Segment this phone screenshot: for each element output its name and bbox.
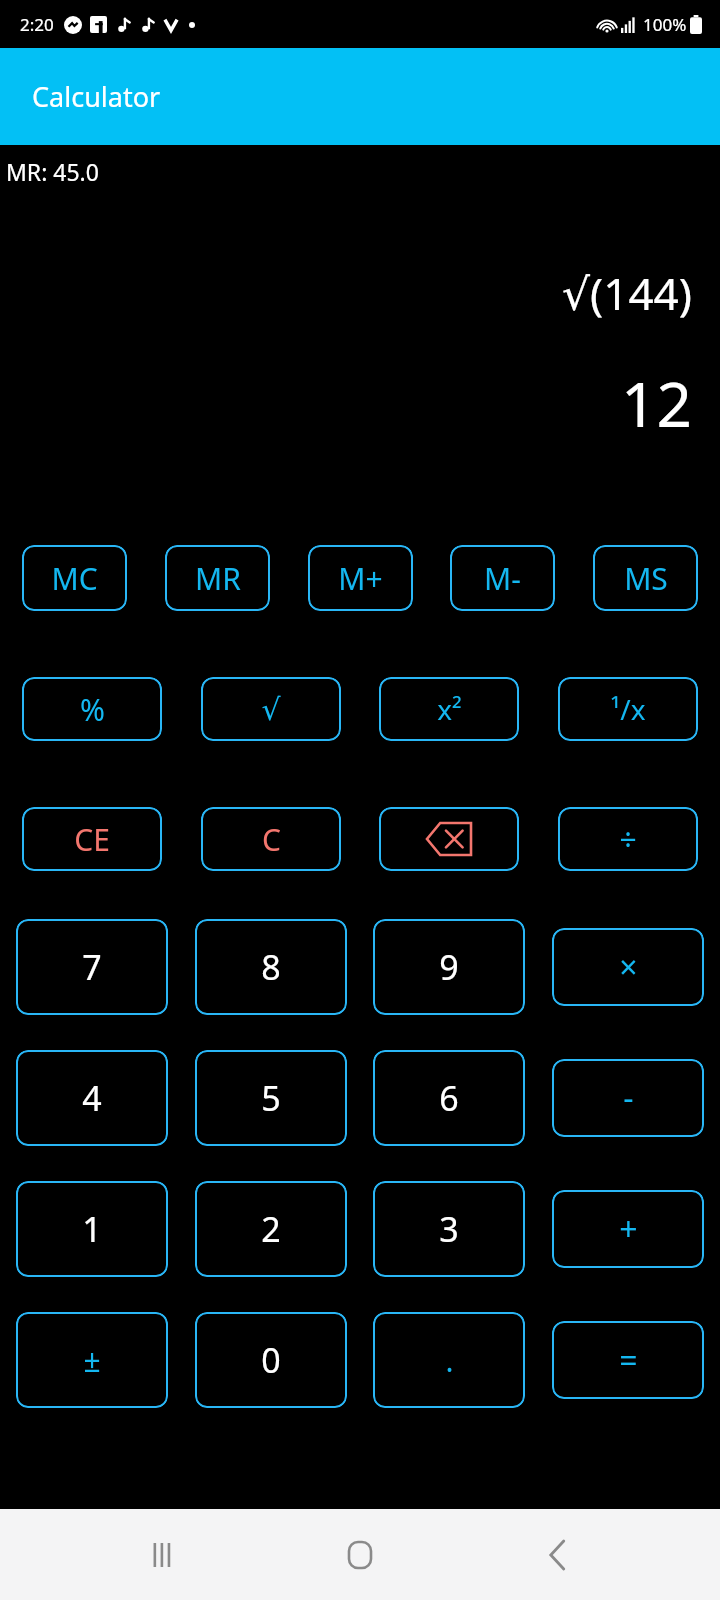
button[interactable]: × — [552, 928, 704, 1006]
staticText: 9 — [439, 944, 459, 990]
staticText: = — [619, 1338, 638, 1382]
button[interactable]: CE — [22, 807, 162, 871]
staticText: 3 — [439, 1206, 459, 1252]
button[interactable]: . — [373, 1312, 525, 1408]
staticText: ± — [83, 1340, 101, 1381]
staticText: % — [80, 689, 105, 730]
button[interactable]: M+ — [308, 545, 413, 611]
button[interactable]: ± — [16, 1312, 168, 1408]
button[interactable]: ¹/x — [558, 677, 698, 741]
staticText: 2:20 — [20, 13, 54, 36]
button[interactable]: ÷ — [558, 807, 698, 871]
button[interactable]: 5 — [195, 1050, 347, 1146]
button[interactable]: x² — [379, 677, 519, 741]
staticText: + — [619, 1207, 638, 1251]
button[interactable]: 0 — [195, 1312, 347, 1408]
button[interactable]: 8 — [195, 919, 347, 1015]
staticText: 4 — [82, 1075, 102, 1121]
button[interactable]: - — [552, 1059, 704, 1137]
staticText: × — [619, 945, 638, 989]
staticText: x² — [437, 690, 462, 728]
staticText: 100% — [643, 13, 687, 36]
staticText: MR — [195, 558, 241, 599]
staticText: . — [445, 1340, 454, 1381]
staticText: 2 — [261, 1206, 281, 1252]
button[interactable]: Home — [325, 1520, 395, 1590]
staticText: √(144) — [562, 263, 692, 323]
button[interactable]: 4 — [16, 1050, 168, 1146]
button[interactable]: % — [22, 677, 162, 741]
staticText: 1 — [82, 1206, 102, 1252]
staticText: 6 — [439, 1075, 459, 1121]
staticText: ÷ — [619, 819, 637, 860]
button[interactable]: Back — [523, 1520, 593, 1590]
button[interactable]: + — [552, 1190, 704, 1268]
button[interactable]: 1 — [16, 1181, 168, 1277]
button[interactable]: 9 — [373, 919, 525, 1015]
button[interactable]: MR — [165, 545, 270, 611]
staticText: C — [262, 819, 281, 860]
button[interactable]: 6 — [373, 1050, 525, 1146]
staticText: - — [623, 1076, 634, 1120]
button[interactable]: Backspace — [379, 807, 519, 871]
staticText: 8 — [261, 944, 281, 990]
staticText: ¹/x — [610, 690, 646, 728]
button[interactable]: 3 — [373, 1181, 525, 1277]
button[interactable]: = — [552, 1321, 704, 1399]
staticText: MR: 45.0 — [6, 156, 99, 187]
staticText: √ — [261, 692, 281, 727]
staticText: 7 — [82, 944, 102, 990]
staticText: MS — [624, 558, 668, 599]
button[interactable]: 2 — [195, 1181, 347, 1277]
button[interactable]: Recents — [128, 1520, 198, 1590]
staticText: 5 — [261, 1075, 281, 1121]
staticText: M+ — [338, 558, 383, 599]
button[interactable]: √ — [201, 677, 341, 741]
staticText: 0 — [261, 1337, 281, 1383]
button[interactable]: C — [201, 807, 341, 871]
button[interactable]: 7 — [16, 919, 168, 1015]
staticText: Calculator — [32, 78, 161, 115]
button[interactable]: MC — [22, 545, 127, 611]
staticText: MC — [51, 558, 98, 599]
button[interactable]: M- — [450, 545, 555, 611]
staticText: 12 — [621, 361, 692, 445]
staticText: M- — [484, 558, 521, 599]
button[interactable]: MS — [593, 545, 698, 611]
staticText: CE — [74, 819, 110, 860]
